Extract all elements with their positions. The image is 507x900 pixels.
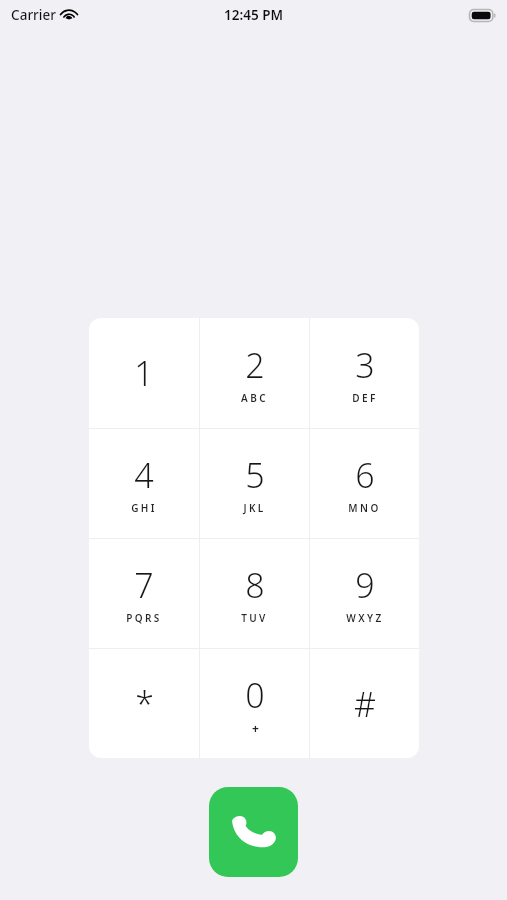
staticText: 4 — [134, 452, 154, 498]
staticText: GHI — [131, 501, 157, 515]
button[interactable]: 0 — [200, 649, 309, 758]
staticText: 7 — [134, 562, 154, 608]
staticText: 9 — [355, 562, 375, 608]
staticText: 8 — [245, 562, 265, 608]
staticText: ABC — [241, 391, 268, 405]
staticText: TUV — [241, 611, 268, 625]
button[interactable]: # — [310, 649, 419, 758]
staticText: 5 — [245, 452, 265, 498]
button[interactable]: 6 — [310, 429, 419, 538]
staticText: PQRS — [126, 611, 162, 625]
staticText: DEF — [352, 391, 378, 405]
button[interactable]: 3 — [310, 318, 419, 428]
button[interactable]: 8 — [200, 539, 309, 648]
button[interactable]: Call — [209, 787, 298, 877]
button[interactable]: 1 — [89, 318, 199, 428]
button[interactable]: 7 — [89, 539, 199, 648]
staticText: # — [354, 681, 376, 727]
staticText: Carrier — [11, 6, 56, 24]
staticText: 0 — [245, 672, 265, 718]
staticText: + — [252, 720, 259, 736]
staticText: 2 — [245, 342, 265, 388]
staticText: 12:45 PM — [224, 6, 283, 24]
button[interactable]: 5 — [200, 429, 309, 538]
button[interactable]: 2 — [200, 318, 309, 428]
staticText: JKL — [243, 501, 266, 515]
staticText: 1 — [134, 350, 154, 396]
button[interactable]: * — [89, 649, 199, 758]
button[interactable]: 9 — [310, 539, 419, 648]
staticText: 6 — [355, 452, 375, 498]
staticText: WXYZ — [346, 611, 384, 625]
staticText: * — [135, 681, 154, 727]
button[interactable]: 4 — [89, 429, 199, 538]
staticText: 3 — [355, 342, 375, 388]
staticText: MNO — [348, 501, 381, 515]
